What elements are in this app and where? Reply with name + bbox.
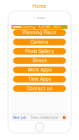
button[interactable]: Planning Place bbox=[13, 29, 66, 36]
staticText: Home bbox=[32, 3, 46, 9]
staticText: ●●●●◦ bbox=[13, 25, 22, 29]
staticText: Carrier bbox=[23, 25, 33, 29]
staticText: Photo Gallery bbox=[24, 49, 54, 54]
staticText: Contact us bbox=[27, 86, 52, 91]
button[interactable]: New job bbox=[13, 116, 26, 119]
staticText: 100% bbox=[53, 25, 61, 29]
staticText: Shoes bbox=[32, 58, 46, 63]
button[interactable]: Contact us bbox=[13, 85, 66, 92]
button[interactable]: Work Apps bbox=[13, 67, 66, 73]
staticText: Time slotted total bbox=[30, 116, 58, 119]
staticText: Time Apps bbox=[28, 76, 51, 82]
staticText: 9:41 AM bbox=[38, 25, 50, 29]
button[interactable]: Shoes bbox=[13, 57, 66, 64]
staticText: ◣ bbox=[34, 25, 36, 28]
staticText: Work Apps bbox=[27, 67, 51, 73]
staticText: Planning Place bbox=[22, 30, 56, 35]
staticText: New job bbox=[13, 116, 26, 119]
staticText: Camera bbox=[30, 39, 48, 45]
button[interactable]: Photo Gallery bbox=[13, 48, 66, 55]
button[interactable]: Settings bbox=[62, 116, 66, 119]
button[interactable]: Time Apps bbox=[13, 76, 66, 82]
button[interactable]: Camera bbox=[13, 39, 66, 45]
